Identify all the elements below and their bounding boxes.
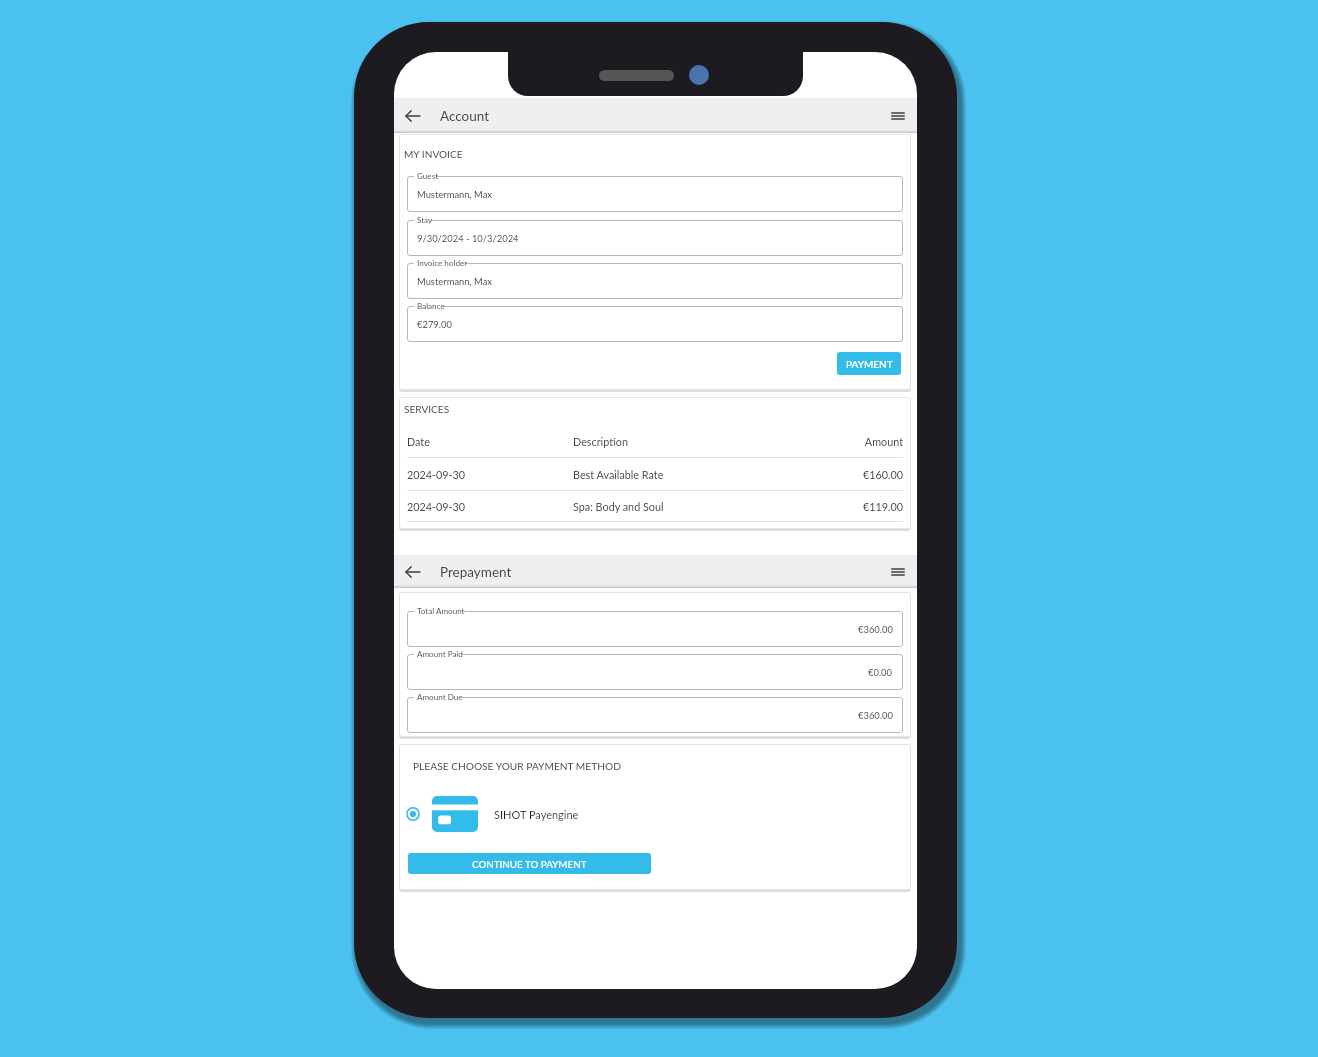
staticText: Amount Paid — [417, 649, 463, 659]
button[interactable]: PAYMENT — [837, 352, 901, 375]
staticText: MY INVOICE — [404, 148, 463, 160]
staticText: €119.00 — [862, 500, 903, 513]
staticText: CONTINUE TO PAYMENT — [472, 858, 587, 870]
staticText: Guest — [417, 171, 439, 181]
staticText: €160.00 — [862, 468, 903, 481]
button[interactable]: Menu — [890, 108, 906, 124]
staticText: SIHOT Payengine — [494, 808, 579, 821]
staticText: 2024-09-30 — [407, 468, 573, 481]
staticText: Prepayment — [440, 564, 512, 580]
staticText: Date — [407, 435, 573, 448]
staticText: Amount — [864, 435, 903, 448]
staticText: Amount Due — [417, 692, 463, 702]
staticText: Mustermann, Max — [417, 276, 492, 287]
staticText: Balance — [417, 301, 445, 311]
button[interactable]: Back — [403, 562, 423, 582]
staticText: Mustermann, Max — [417, 189, 492, 200]
button[interactable]: Menu — [890, 564, 906, 580]
button[interactable]: CONTINUE TO PAYMENT — [408, 853, 651, 874]
staticText: Best Available Rate — [573, 468, 862, 481]
staticText: Account — [440, 108, 490, 124]
staticText: SERVICES — [404, 403, 450, 415]
staticText: Total Amount — [417, 606, 465, 616]
staticText: €0.00 — [868, 667, 893, 678]
staticText: €279.00 — [417, 319, 452, 330]
staticText: €360.00 — [858, 624, 893, 635]
staticText: PLEASE CHOOSE YOUR PAYMENT METHOD — [413, 760, 621, 772]
staticText: Spa: Body and Soul — [573, 500, 862, 513]
button[interactable]: SIHOT Payengine — [406, 796, 911, 832]
staticText: €360.00 — [858, 710, 893, 721]
staticText: Description — [573, 435, 864, 448]
staticText: Stay — [417, 215, 433, 225]
staticText: Invoice holder — [417, 258, 468, 268]
staticText: 2024-09-30 — [407, 500, 573, 513]
staticText: 9/30/2024 - 10/3/2024 — [417, 233, 519, 244]
staticText: PAYMENT — [846, 358, 893, 370]
button[interactable]: Back — [403, 106, 423, 126]
